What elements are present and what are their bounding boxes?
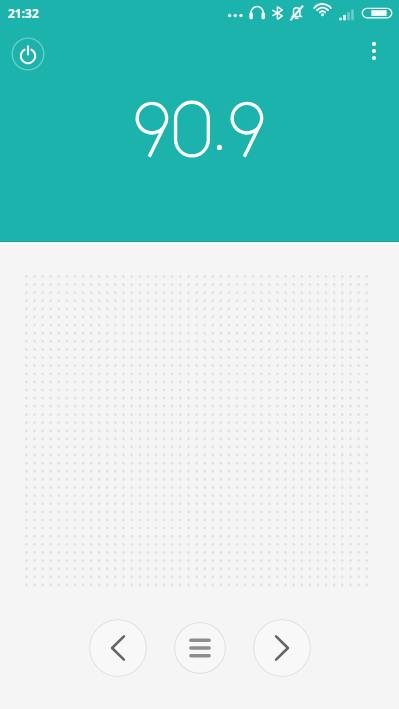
button[interactable]: Next station bbox=[253, 619, 311, 677]
button[interactable]: Power bbox=[11, 37, 45, 71]
staticText: 21:32 bbox=[8, 5, 39, 21]
button[interactable]: More options bbox=[357, 34, 391, 68]
button[interactable]: Previous station bbox=[89, 619, 147, 677]
button[interactable]: Station list bbox=[174, 622, 226, 674]
